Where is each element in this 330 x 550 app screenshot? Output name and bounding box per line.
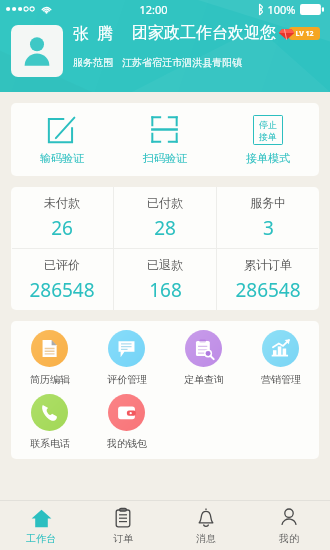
staticText: 286548 xyxy=(29,277,95,303)
staticText: 26 xyxy=(51,215,73,241)
button[interactable]: 未付款 xyxy=(11,187,113,248)
staticText: 联系电话 xyxy=(30,437,70,450)
button[interactable]: 累计订单 xyxy=(217,249,319,310)
button[interactable]: 扫码验证 xyxy=(113,103,216,176)
staticText: 接单 xyxy=(259,131,277,142)
staticText: 消息 xyxy=(196,532,216,545)
staticText: 订单 xyxy=(113,532,133,545)
staticText: 张 腾 xyxy=(73,22,114,44)
staticText: 评价管理 xyxy=(107,373,147,386)
button[interactable]: 已退款 xyxy=(114,249,216,310)
button[interactable]: 联系电话 xyxy=(11,394,88,450)
staticText: 未付款 xyxy=(44,195,80,210)
staticText: 我的 xyxy=(279,532,299,545)
staticText: 营销管理 xyxy=(261,373,301,386)
staticText: 输码验证 xyxy=(40,151,84,165)
staticText: LV 12 xyxy=(295,29,314,39)
staticText: 停止 xyxy=(259,119,277,130)
button[interactable]: 我的钱包 xyxy=(88,394,165,450)
staticText: 服务范围 xyxy=(73,56,113,69)
staticText: 已付款 xyxy=(147,195,183,210)
button[interactable]: 我的 xyxy=(247,501,330,550)
button[interactable]: 停止 xyxy=(216,103,319,176)
staticText: 江苏省宿迁市泗洪县青阳镇 xyxy=(122,56,242,69)
button[interactable]: 已付款 xyxy=(114,187,216,248)
staticText: 扫码验证 xyxy=(143,151,187,165)
button[interactable]: 已评价 xyxy=(11,249,113,310)
button[interactable]: 营销管理 xyxy=(242,330,319,386)
button[interactable]: 服务中 xyxy=(217,187,319,248)
button[interactable]: 输码验证 xyxy=(11,103,113,176)
button[interactable]: 消息 xyxy=(164,501,247,550)
staticText: 3 xyxy=(263,215,274,241)
button[interactable]: 工作台 xyxy=(0,501,82,550)
staticText: 100% xyxy=(267,2,296,17)
staticText: 286548 xyxy=(235,277,301,303)
button[interactable]: 评价管理 xyxy=(88,330,165,386)
staticText: 累计订单 xyxy=(244,257,292,272)
staticText: 28 xyxy=(154,215,176,241)
staticText: 工作台 xyxy=(26,532,56,545)
staticText: 简历编辑 xyxy=(30,373,70,386)
button[interactable]: 简历编辑 xyxy=(11,330,88,386)
staticText: 168 xyxy=(149,277,182,303)
staticText: 我的钱包 xyxy=(107,437,147,450)
staticText: 12:00 xyxy=(139,2,168,17)
staticText: 定单查询 xyxy=(184,373,224,386)
staticText: 团家政工作台欢迎您 xyxy=(132,23,276,43)
staticText: 已退款 xyxy=(147,257,183,272)
staticText: 服务中 xyxy=(250,195,286,210)
button[interactable]: 定单查询 xyxy=(165,330,242,386)
button[interactable]: 订单 xyxy=(82,501,164,550)
staticText: 接单模式 xyxy=(246,151,290,165)
button[interactable]: Level 12 xyxy=(278,26,320,41)
button[interactable]: Avatar xyxy=(11,25,63,77)
staticText: 已评价 xyxy=(44,257,80,272)
